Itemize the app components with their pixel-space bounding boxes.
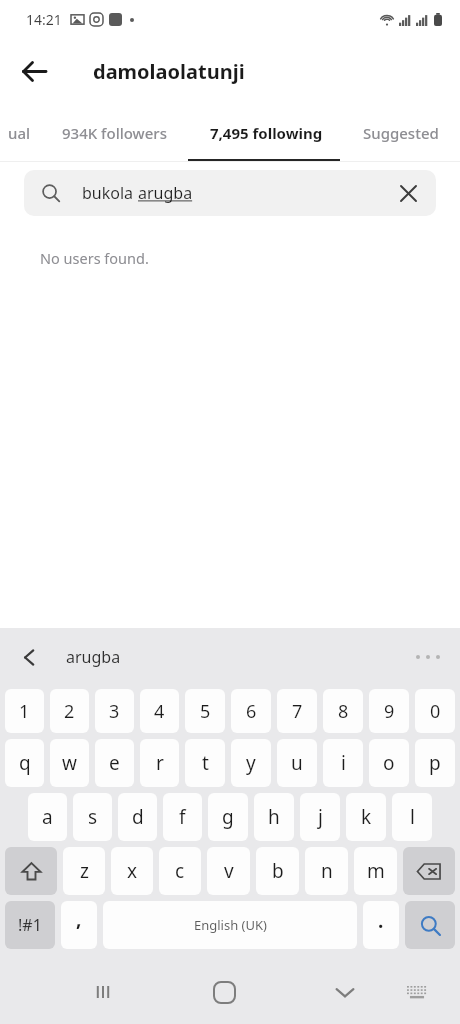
button[interactable]: ual <box>0 104 38 162</box>
button[interactable]: u <box>277 739 317 787</box>
button[interactable]: b <box>256 847 299 895</box>
staticText: r <box>156 750 164 776</box>
button[interactable]: k <box>346 793 386 841</box>
staticText: , <box>76 906 82 932</box>
staticText: 1 <box>19 699 30 724</box>
staticText: 6 <box>246 699 257 724</box>
staticText: l <box>410 804 415 830</box>
staticText: z <box>80 858 89 884</box>
staticText: arugba <box>66 646 121 668</box>
staticText: English (UK) <box>194 916 267 934</box>
button[interactable]: 7 <box>277 689 317 733</box>
staticText: t <box>202 750 209 776</box>
button[interactable]: 9 <box>369 689 409 733</box>
button[interactable]: m <box>354 847 397 895</box>
staticText: v <box>224 858 234 884</box>
staticText: No users found. <box>40 248 149 268</box>
button[interactable]: !#1 <box>5 901 55 949</box>
staticText: j <box>318 804 323 830</box>
button[interactable]: n <box>305 847 348 895</box>
button[interactable]: . <box>363 901 399 949</box>
button[interactable]: Back <box>10 47 58 95</box>
staticText: damolaolatunji <box>93 58 245 85</box>
staticText: . <box>378 908 384 934</box>
button[interactable]: English (UK) <box>103 901 357 949</box>
staticText: w <box>62 750 77 776</box>
button[interactable]: q <box>5 739 44 787</box>
button[interactable]: Search <box>405 901 455 949</box>
button[interactable]: arugba <box>66 634 121 680</box>
button[interactable]: j <box>300 793 340 841</box>
staticText: h <box>268 804 280 830</box>
button[interactable]: o <box>369 739 409 787</box>
staticText: k <box>361 804 372 830</box>
button[interactable]: f <box>163 793 202 841</box>
staticText: 14:21 <box>26 10 62 29</box>
button[interactable]: 3 <box>95 689 134 733</box>
staticText: o <box>383 750 395 776</box>
button[interactable]: 1 <box>5 689 44 733</box>
staticText: x <box>127 858 138 884</box>
staticText: y <box>246 750 256 776</box>
staticText: 9 <box>384 699 395 724</box>
staticText: s <box>88 804 98 830</box>
staticText: Suggested <box>363 123 439 143</box>
staticText: 3 <box>109 699 120 724</box>
button[interactable]: d <box>118 793 157 841</box>
button[interactable]: c <box>159 847 201 895</box>
button[interactable]: g <box>208 793 248 841</box>
button[interactable]: v <box>207 847 250 895</box>
staticText: m <box>367 858 385 884</box>
button[interactable]: i <box>323 739 363 787</box>
button[interactable]: w <box>50 739 89 787</box>
button[interactable]: 7,495 following <box>190 104 342 162</box>
button[interactable]: s <box>73 793 112 841</box>
button[interactable]: t <box>185 739 225 787</box>
button[interactable]: 4 <box>140 689 179 733</box>
button[interactable]: 934K followers <box>38 104 190 162</box>
button[interactable]: a <box>28 793 67 841</box>
button[interactable]: l <box>392 793 432 841</box>
button[interactable]: r <box>140 739 179 787</box>
staticText: 8 <box>338 699 349 724</box>
staticText: ual <box>8 123 31 143</box>
button[interactable]: Recent apps <box>75 964 131 1020</box>
button[interactable]: 2 <box>50 689 89 733</box>
button[interactable]: p <box>415 739 455 787</box>
button[interactable]: Hide keyboard <box>317 964 373 1020</box>
staticText: p <box>429 750 441 776</box>
button[interactable]: h <box>254 793 294 841</box>
button[interactable]: , <box>61 901 97 949</box>
button[interactable]: Change keyboard <box>392 967 442 1017</box>
button[interactable]: Backspace <box>403 847 455 895</box>
staticText: b <box>272 858 284 884</box>
button[interactable]: Previous suggestion <box>6 634 52 680</box>
button[interactable]: z <box>63 847 105 895</box>
staticText: e <box>109 750 120 776</box>
button[interactable]: 8 <box>323 689 363 733</box>
button[interactable]: Clear search <box>388 173 428 213</box>
staticText: 934K followers <box>62 123 167 143</box>
button[interactable]: 6 <box>231 689 271 733</box>
staticText: 2 <box>64 699 75 724</box>
button[interactable]: 0 <box>415 689 455 733</box>
button[interactable]: e <box>95 739 134 787</box>
staticText: !#1 <box>18 914 42 936</box>
button[interactable]: Shift <box>5 847 57 895</box>
button[interactable]: bukola <box>24 170 436 216</box>
staticText: 5 <box>200 699 211 724</box>
staticText: d <box>132 804 144 830</box>
staticText: n <box>321 858 333 884</box>
staticText: u <box>291 750 303 776</box>
staticText: f <box>179 804 186 830</box>
button[interactable]: More options <box>416 637 440 677</box>
button[interactable]: 5 <box>185 689 225 733</box>
button[interactable]: x <box>111 847 153 895</box>
staticText: 7,495 following <box>210 123 323 143</box>
button[interactable]: Suggested <box>342 104 460 162</box>
staticText: 0 <box>430 699 441 724</box>
button[interactable]: Home <box>196 964 252 1020</box>
staticText: g <box>222 804 234 830</box>
button[interactable]: y <box>231 739 271 787</box>
staticText: a <box>42 804 53 830</box>
